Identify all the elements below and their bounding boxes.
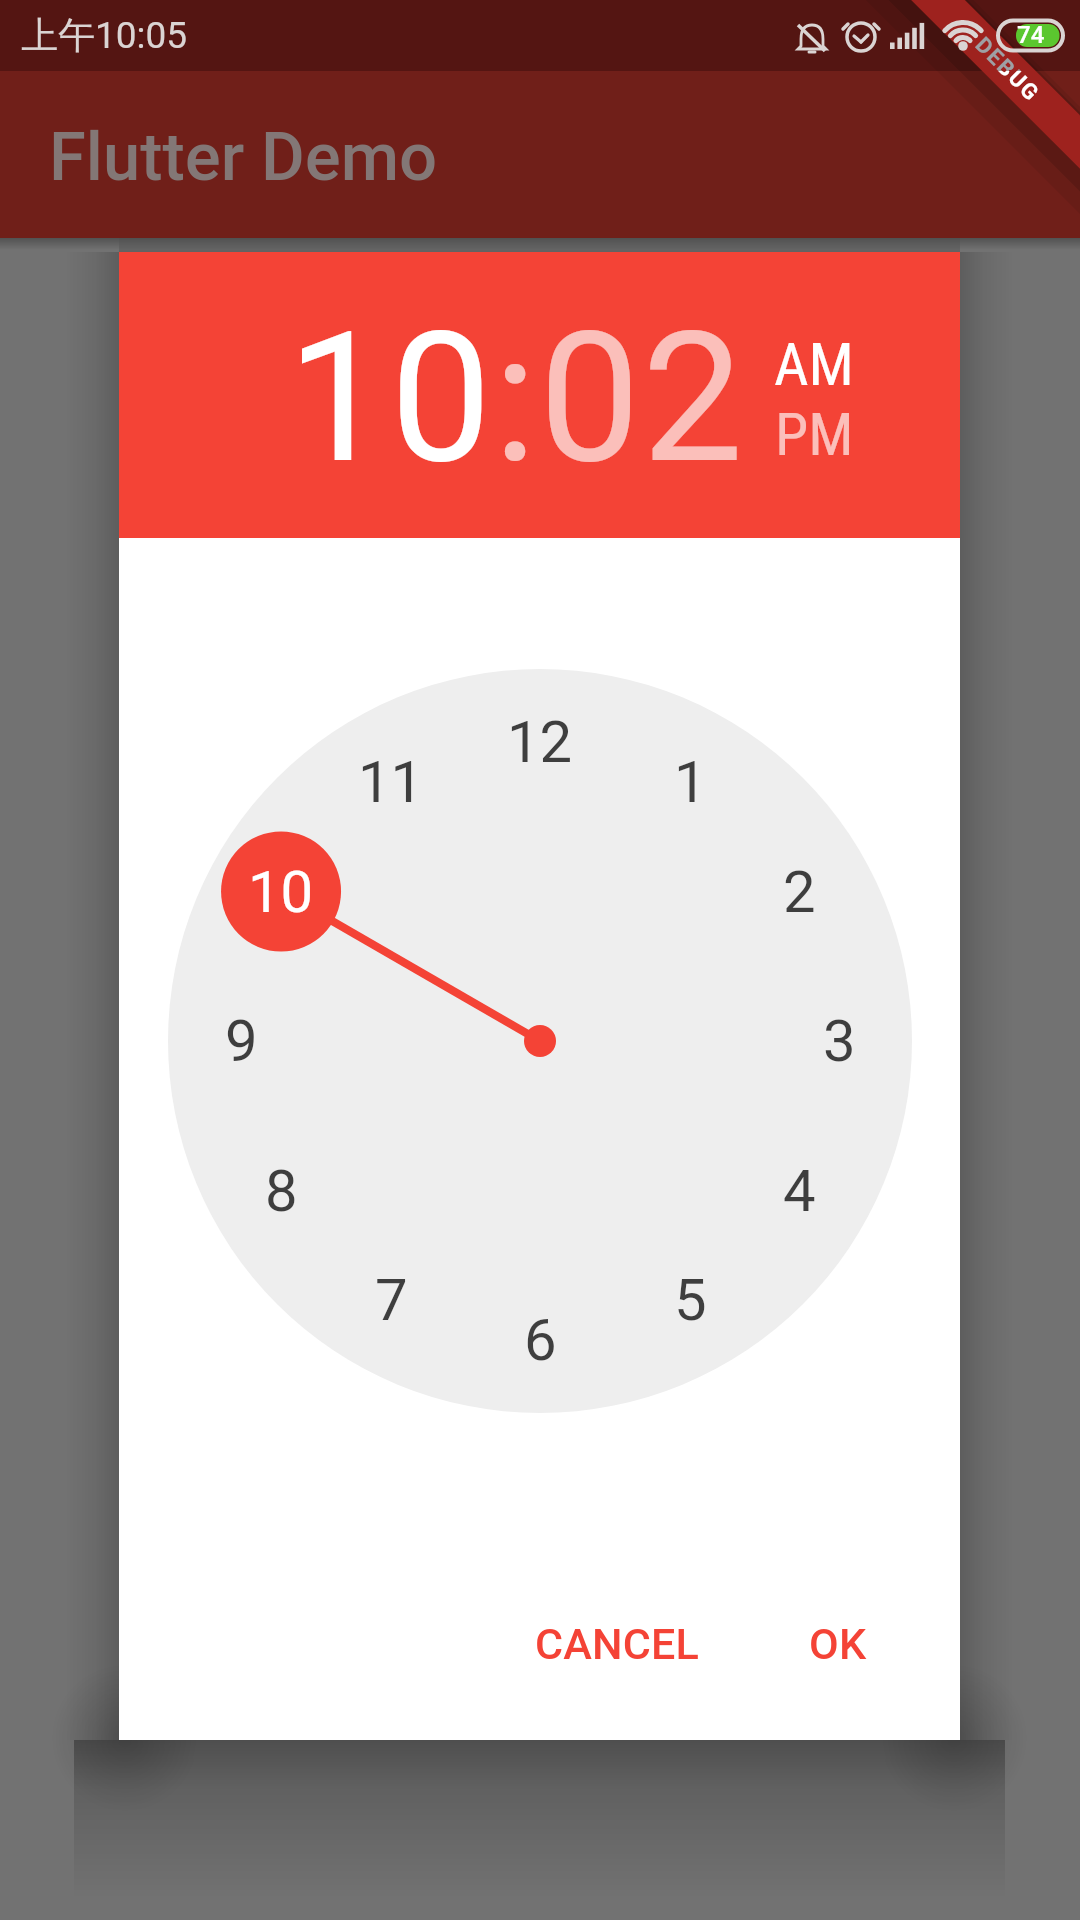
staticText: OK [809,1619,867,1669]
staticText: DEBUG [970,71,1045,108]
button[interactable]: CANCEL [492,1589,742,1699]
staticText: 9 [225,1007,258,1075]
staticText: 5 [674,1266,707,1334]
staticText: DEBUG [970,32,1045,71]
staticText: Flutter Demo [49,118,438,197]
staticText: 8 [265,1157,298,1225]
staticText: 6 [524,1306,557,1374]
staticText: 12 [507,708,573,776]
button[interactable]: AM [774,329,854,399]
staticText: 7 [375,1266,408,1334]
staticText: 1 [674,748,707,816]
button[interactable]: PM [775,399,854,469]
staticText: CANCEL [535,1619,700,1669]
staticText: 10:02 [287,293,746,504]
staticText: 74 [1017,21,1045,49]
button[interactable]: OK [763,1589,913,1699]
staticText: 10 [248,858,314,926]
staticText: 上午10:05 [21,12,188,59]
staticText: 4 [783,1157,816,1225]
staticText: 3 [823,1007,856,1075]
staticText: 2 [783,858,816,926]
staticText: 11 [358,748,424,816]
